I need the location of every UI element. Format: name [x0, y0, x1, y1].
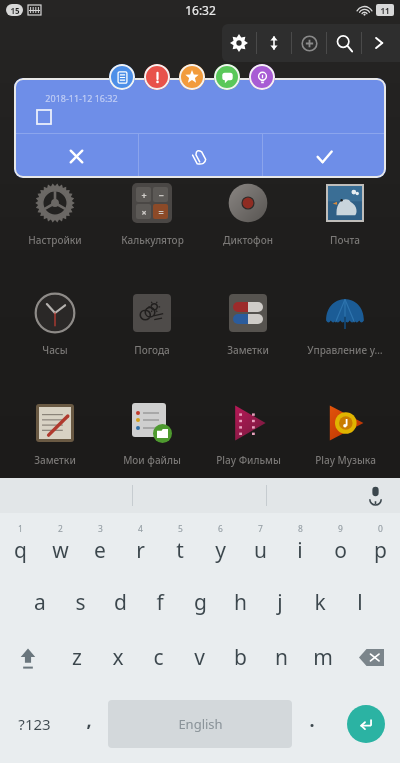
button[interactable]: j [260, 575, 300, 630]
staticText: + [141, 189, 147, 201]
button[interactable]: Заметки [202, 290, 294, 357]
staticText: h [234, 588, 247, 617]
button[interactable]: Add [292, 24, 326, 62]
staticText: 2018-11-12 16:32 [45, 92, 118, 104]
staticText: x [112, 643, 124, 672]
staticText: Play Фильмы [216, 453, 281, 467]
button[interactable]: English [108, 700, 292, 748]
staticText: ?123 [18, 714, 51, 734]
staticText: Почта [330, 233, 360, 247]
button[interactable]: Shift [0, 630, 56, 685]
staticText: y [215, 536, 226, 565]
button[interactable]: z [56, 630, 97, 685]
button[interactable]: 8 [280, 513, 320, 575]
button[interactable]: n [261, 630, 302, 685]
button[interactable]: 4 [120, 513, 160, 575]
staticText: 15 [10, 5, 20, 16]
button[interactable]: Заметки [9, 400, 101, 467]
button[interactable]: 1 [0, 513, 40, 575]
button[interactable]: Important [144, 64, 170, 90]
button[interactable]: List [109, 64, 135, 90]
button[interactable]: 5 [160, 513, 200, 575]
staticText: u [254, 536, 267, 565]
staticText: p [374, 536, 387, 565]
button[interactable]: h [220, 575, 260, 630]
staticText: m [313, 643, 333, 672]
button[interactable]: g [180, 575, 220, 630]
button[interactable]: + [106, 180, 198, 247]
button[interactable]: Confirm [263, 134, 386, 178]
button[interactable]: . [292, 685, 331, 763]
staticText: Play Музыка [315, 453, 376, 467]
staticText: f [156, 588, 164, 617]
staticText: Заметки [34, 453, 76, 467]
staticText: = [158, 206, 164, 218]
button[interactable]: x [97, 630, 138, 685]
staticText: c [153, 643, 164, 672]
button[interactable]: Погода [106, 290, 198, 357]
button[interactable]: b [220, 630, 261, 685]
button[interactable]: Play Музыка [299, 400, 391, 467]
staticText: Мои файлы [123, 453, 181, 467]
button[interactable]: v [179, 630, 220, 685]
button[interactable]: f [140, 575, 180, 630]
button[interactable]: 0 [360, 513, 400, 575]
button[interactable]: m [302, 630, 343, 685]
staticText: i [297, 536, 303, 565]
button[interactable]: a [20, 575, 60, 630]
button[interactable]: More [362, 24, 396, 62]
button[interactable]: Backspace [343, 630, 400, 685]
button[interactable]: , [69, 685, 108, 763]
button[interactable]: Настройки [9, 180, 101, 247]
staticText: q [14, 536, 27, 565]
staticText: s [75, 588, 86, 617]
button[interactable]: 6 [200, 513, 240, 575]
button[interactable]: Attach [139, 134, 262, 178]
staticText: a [34, 588, 46, 617]
button[interactable]: Enter [331, 685, 400, 763]
button[interactable]: d [100, 575, 140, 630]
staticText: Погода [134, 343, 170, 357]
button[interactable]: Idea [249, 64, 275, 90]
button[interactable]: ?123 [0, 685, 69, 763]
button[interactable]: 3 [80, 513, 120, 575]
button[interactable]: Search [327, 24, 361, 62]
staticText: b [234, 643, 247, 672]
button[interactable]: Checkbox [37, 110, 51, 124]
staticText: 9 [338, 523, 343, 535]
button[interactable]: Управление у… [299, 290, 391, 357]
staticText: g [194, 588, 207, 617]
button[interactable]: s [60, 575, 100, 630]
button[interactable]: Диктофон [202, 180, 294, 247]
staticText: . [309, 708, 315, 733]
button[interactable]: l [340, 575, 380, 630]
button[interactable]: Favorite [179, 64, 205, 90]
button[interactable]: 7 [240, 513, 280, 575]
staticText: − [158, 189, 164, 201]
staticText: 4 [138, 523, 143, 535]
button[interactable]: k [300, 575, 340, 630]
staticText: t [176, 536, 184, 565]
button[interactable]: Почта [299, 180, 391, 247]
button[interactable]: 9 [320, 513, 360, 575]
staticText: r [136, 536, 145, 565]
button[interactable]: Voice input [267, 478, 400, 513]
button[interactable]: Мои файлы [106, 400, 198, 467]
staticText: Настройки [28, 233, 82, 247]
button[interactable]: Chat [214, 64, 240, 90]
staticText: k [314, 588, 326, 617]
staticText: l [357, 588, 363, 617]
button[interactable]: Часы [9, 290, 101, 357]
button[interactable]: Play Фильмы [202, 400, 294, 467]
button[interactable]: Cancel [14, 134, 138, 178]
staticText: 1 [18, 523, 23, 535]
staticText: Калькулятор [121, 233, 184, 247]
button[interactable]: Settings [222, 24, 256, 62]
staticText: Диктофон [223, 233, 273, 247]
staticText: 16:32 [185, 2, 216, 18]
button[interactable]: Resize [257, 24, 291, 62]
button[interactable]: 2 [40, 513, 80, 575]
button[interactable]: c [138, 630, 179, 685]
